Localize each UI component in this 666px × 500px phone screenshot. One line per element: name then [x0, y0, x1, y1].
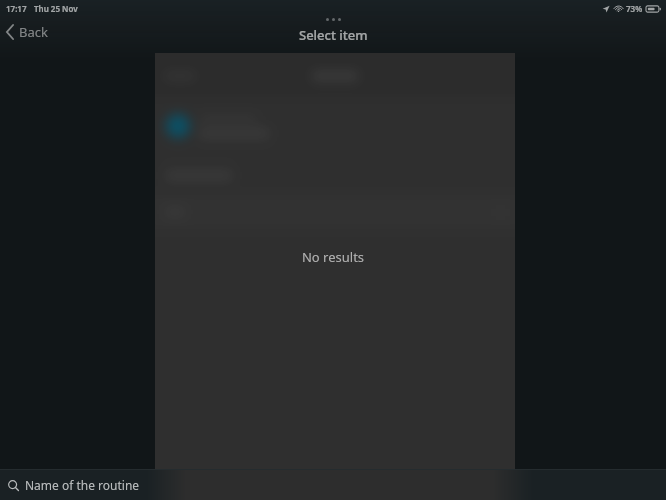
staticText: Thu 25 Nov — [34, 3, 78, 14]
button[interactable]: Back — [0, 19, 58, 45]
staticText: 73% — [626, 3, 643, 14]
staticText: Back — [19, 23, 48, 41]
staticText: Select item — [299, 26, 368, 44]
staticText: 17:17 — [6, 3, 27, 14]
staticText: Name of the routine — [25, 477, 140, 493]
button[interactable]: Name of the routine — [0, 470, 666, 500]
staticText: No results — [0, 248, 666, 266]
